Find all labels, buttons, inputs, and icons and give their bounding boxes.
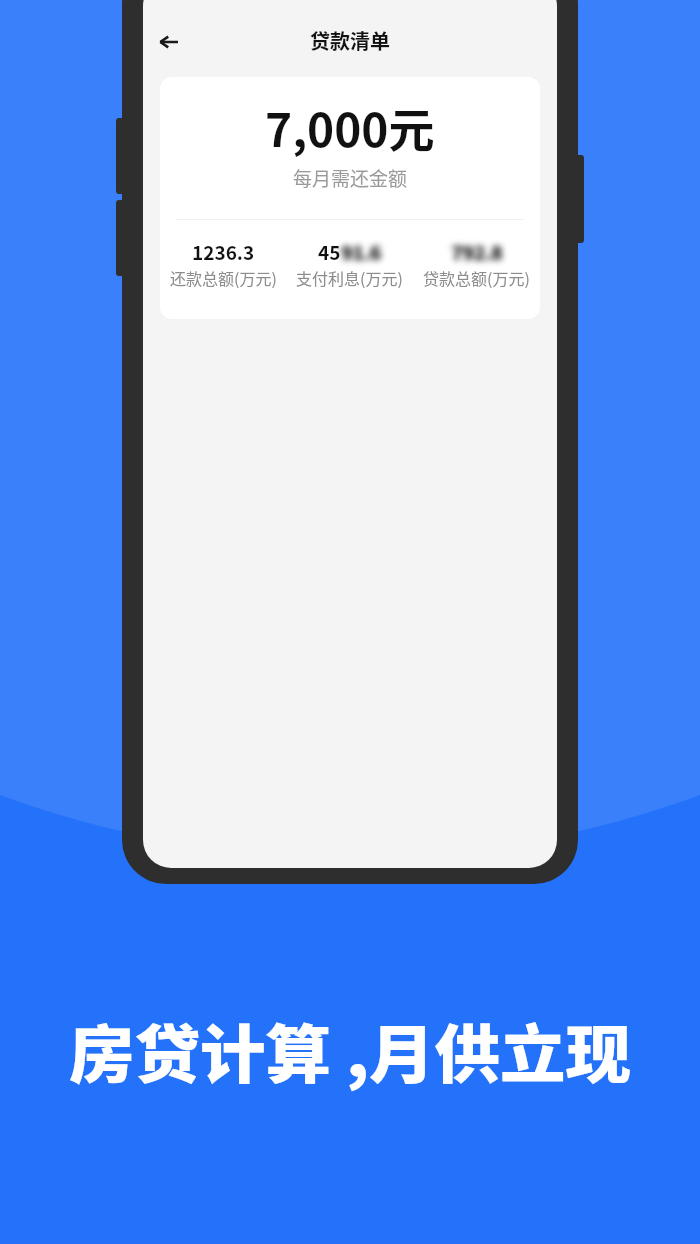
staticText: 91.6	[342, 238, 382, 266]
staticText: 支付利息(万元)	[296, 266, 403, 289]
staticText: 792.8	[451, 238, 503, 266]
staticText: 792.8	[452, 238, 504, 266]
button[interactable]: Back	[151, 24, 187, 60]
staticText: 贷款总额(万元)	[423, 266, 530, 289]
staticText: 贷款清单	[310, 26, 390, 55]
staticText: 91.6	[341, 238, 381, 266]
staticText: 每月需还金额	[293, 164, 408, 192]
staticText: 还款总额(万元)	[170, 266, 277, 289]
staticText: 45	[318, 238, 341, 266]
staticText: 1236.3	[192, 238, 255, 266]
staticText: 7,000元	[265, 94, 435, 161]
staticText: 房贷计算 ,月供立现	[69, 1004, 631, 1095]
